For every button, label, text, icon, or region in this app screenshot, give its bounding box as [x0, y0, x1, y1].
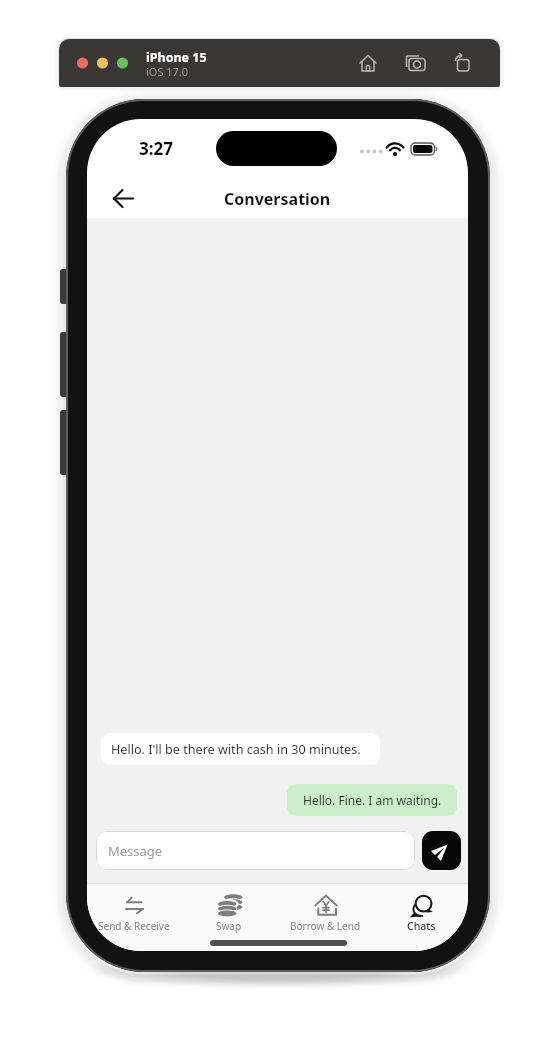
button[interactable]	[422, 831, 461, 870]
staticText: Hello. Fine. I am waiting.	[303, 792, 442, 808]
staticText: Message	[108, 842, 163, 860]
staticText: Hello. I'll be there with cash in 30 min…	[111, 741, 361, 758]
button[interactable]: Hello. I'll be there with cash in 30 min…	[101, 733, 380, 765]
staticText: Send & Receive	[98, 919, 170, 933]
button[interactable]	[451, 52, 475, 76]
button[interactable]: Hello. Fine. I am waiting.	[287, 784, 457, 816]
button[interactable]	[357, 52, 381, 76]
staticText: 3:27	[139, 137, 173, 159]
staticText: Chats	[407, 919, 436, 933]
staticText: iPhone 15	[146, 49, 207, 66]
button[interactable]	[182, 884, 277, 946]
staticText: iOS 17.0	[146, 64, 189, 79]
staticText: Borrow & Lend	[290, 919, 361, 933]
button[interactable]: Message	[96, 831, 415, 870]
button[interactable]	[405, 52, 429, 76]
button[interactable]	[87, 884, 182, 946]
button[interactable]	[372, 884, 468, 946]
button[interactable]	[277, 884, 372, 946]
staticText: Swap	[216, 919, 242, 933]
button[interactable]	[107, 182, 141, 216]
staticText: Conversation	[224, 188, 331, 210]
